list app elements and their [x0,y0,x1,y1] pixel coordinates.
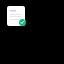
button[interactable] [7,6,25,26]
button[interactable]: Completed [19,19,26,26]
